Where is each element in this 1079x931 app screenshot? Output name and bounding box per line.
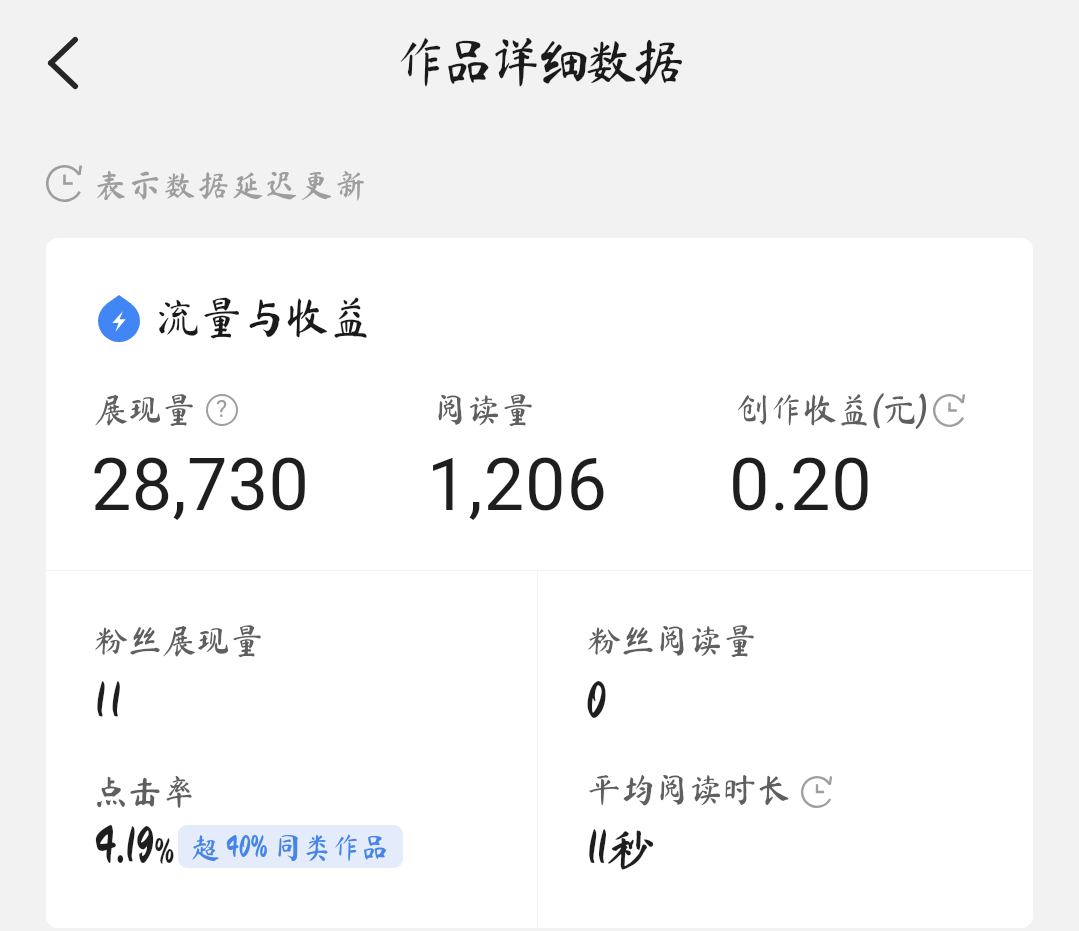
staticText: 0 — [586, 676, 607, 726]
staticText: 表示数据延迟更新 — [95, 169, 369, 201]
staticText: 展现量 — [94, 392, 196, 426]
staticText: 28,730 — [91, 443, 310, 527]
staticText: 11 — [95, 676, 126, 726]
staticText: ? — [216, 395, 228, 423]
button[interactable]: Back — [25, 25, 101, 101]
staticText: % — [154, 835, 175, 869]
staticText: 超 40% 同类作品 — [191, 832, 390, 861]
staticText: 0.20 — [729, 443, 873, 527]
staticText: 流量与收益 — [157, 295, 372, 338]
staticText: 4.19 — [94, 821, 154, 871]
staticText: 平均阅读时长 — [587, 772, 791, 806]
button[interactable]: What is impressions? — [206, 394, 238, 426]
staticText: 作品详细数据 — [394, 34, 681, 87]
staticText: 粉丝阅读量 — [587, 623, 757, 657]
other: Data updates with a delay — [801, 776, 833, 808]
staticText: 阅读量 — [433, 392, 535, 426]
staticText: 创作收益(元) — [735, 392, 929, 426]
staticText: 粉丝展现量 — [94, 623, 264, 657]
staticText: 点击率 — [94, 774, 196, 808]
other: Data updates with a delay — [46, 165, 83, 202]
button[interactable]: 超 40% 同类作品 — [178, 825, 403, 868]
staticText: 1,206 — [427, 443, 609, 527]
staticText: 11秒 — [587, 825, 655, 873]
other: Data updates with a delay — [933, 394, 966, 427]
